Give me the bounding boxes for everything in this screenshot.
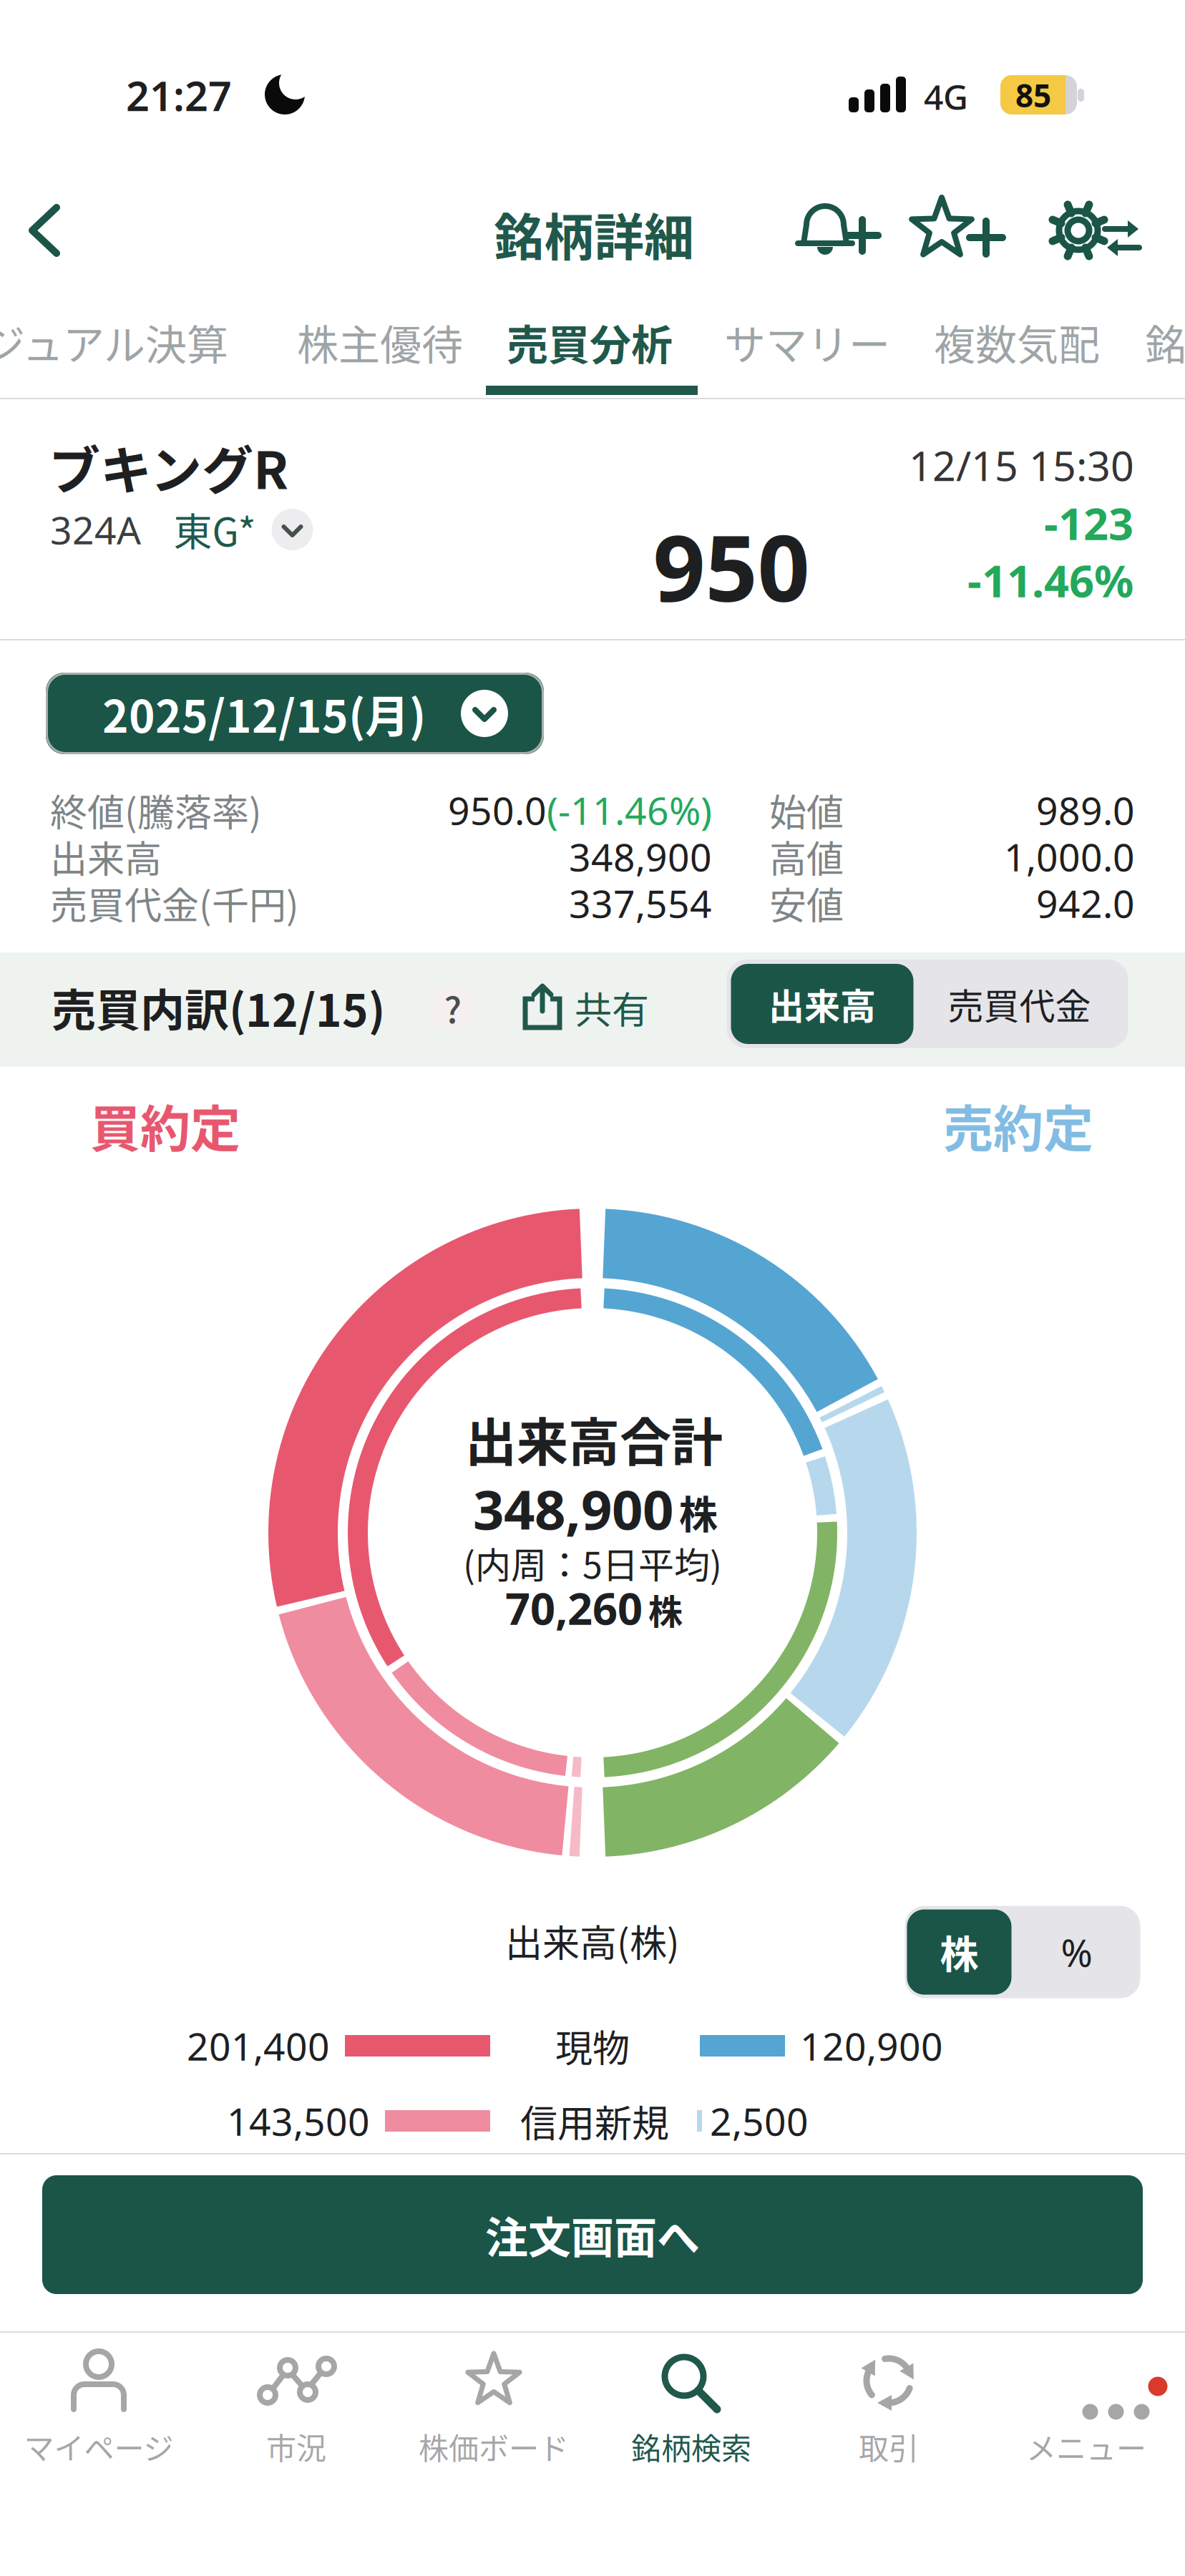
staticText: 銘柄詳細 bbox=[494, 198, 694, 270]
staticText: 注文画面へ bbox=[485, 2204, 700, 2266]
staticText: 143,500 bbox=[227, 2096, 370, 2146]
staticText: 現物 bbox=[555, 2019, 630, 2073]
staticText: 348,900 bbox=[569, 831, 712, 882]
staticText: 942.0 bbox=[1036, 878, 1135, 928]
staticText: 売買内訳(12/15) bbox=[52, 975, 385, 1040]
staticText: % bbox=[1061, 1927, 1092, 1977]
staticText: (-11.46%) bbox=[547, 785, 712, 835]
button[interactable]: マイページ bbox=[2, 2340, 195, 2476]
button[interactable]: 通知を追加 bbox=[789, 190, 882, 268]
button[interactable]: サマリー bbox=[724, 312, 890, 372]
staticText: 989.0 bbox=[1036, 785, 1135, 835]
staticText: 出来高合計 bbox=[465, 1401, 723, 1476]
staticText: 株 bbox=[648, 1584, 683, 1634]
staticText: 売買代金(千円) bbox=[50, 876, 299, 930]
button[interactable]: 出来高 bbox=[731, 964, 913, 1044]
staticText: 複数気配 bbox=[934, 312, 1100, 372]
staticText: 高値 bbox=[769, 830, 844, 883]
button[interactable]: 東G* bbox=[174, 502, 313, 557]
staticText: 12/15 15:30 bbox=[909, 438, 1134, 492]
staticText: 信用新規 bbox=[520, 2094, 669, 2148]
staticText: 出来高 bbox=[50, 830, 162, 883]
staticText: 売買分析 bbox=[507, 312, 673, 372]
staticText: 70,260 bbox=[505, 1579, 643, 1637]
staticText: 2025/12/15(月) bbox=[102, 681, 426, 746]
staticText: 株 bbox=[940, 1924, 979, 1980]
staticText: 1,000.0 bbox=[1004, 831, 1135, 882]
staticText: ジュアル決算 bbox=[0, 312, 228, 372]
button[interactable]: ヘルプ bbox=[431, 982, 475, 1033]
staticText: 銘柄 bbox=[1145, 312, 1185, 372]
staticText: メニュー bbox=[1026, 2425, 1146, 2468]
button[interactable]: % bbox=[1016, 1906, 1137, 1998]
staticText: 950 bbox=[653, 505, 810, 627]
button[interactable]: 売買代金 bbox=[914, 960, 1125, 1048]
staticText: 201,400 bbox=[187, 2020, 330, 2071]
staticText: 買約定 bbox=[90, 1089, 240, 1162]
button[interactable]: 銘柄 bbox=[1145, 312, 1185, 372]
staticText: マイページ bbox=[24, 2425, 174, 2468]
staticText: サマリー bbox=[724, 312, 890, 372]
staticText: (内周：5日平均) bbox=[463, 1537, 722, 1589]
button[interactable]: 市況 bbox=[200, 2340, 393, 2476]
staticText: 取引 bbox=[859, 2425, 919, 2468]
button[interactable]: 共有 bbox=[522, 981, 649, 1034]
staticText: 120,900 bbox=[800, 2020, 943, 2071]
staticText: 324A bbox=[50, 504, 141, 555]
staticText: 終値(騰落率) bbox=[50, 783, 262, 837]
staticText: 85 bbox=[1015, 74, 1051, 116]
staticText: 337,554 bbox=[569, 878, 712, 928]
staticText: 株主優待 bbox=[297, 312, 463, 372]
staticText: 共有 bbox=[575, 981, 649, 1034]
button[interactable]: 複数気配 bbox=[934, 312, 1100, 372]
staticText: 売約定 bbox=[943, 1089, 1093, 1162]
staticText: ? bbox=[444, 982, 462, 1033]
staticText: -11.46% bbox=[967, 551, 1133, 609]
staticText: 出来高(株) bbox=[505, 1914, 680, 1968]
staticText: 2,500 bbox=[710, 2096, 809, 2146]
staticText: ブキングR bbox=[49, 429, 288, 504]
button[interactable]: 売買分析 bbox=[507, 312, 673, 372]
staticText: 始値 bbox=[769, 783, 844, 837]
button[interactable]: 設定 bbox=[1030, 190, 1145, 268]
button[interactable]: 注文画面へ bbox=[42, 2175, 1143, 2294]
staticText: 安値 bbox=[769, 876, 844, 930]
staticText: 348,900 bbox=[473, 1472, 673, 1544]
staticText: 950.0 bbox=[448, 785, 547, 835]
button[interactable]: 株主優待 bbox=[297, 312, 463, 372]
button[interactable]: 株 bbox=[907, 1909, 1011, 1995]
button[interactable]: 銘柄検索 bbox=[595, 2340, 788, 2476]
staticText: 銘柄検索 bbox=[631, 2425, 751, 2468]
staticText: 出来高 bbox=[769, 978, 876, 1030]
button[interactable]: Back bbox=[12, 191, 77, 270]
button[interactable]: ジュアル決算 bbox=[0, 312, 228, 372]
button[interactable]: お気に入りに追加 bbox=[910, 190, 1003, 268]
staticText: 市況 bbox=[266, 2425, 326, 2468]
staticText: 株 bbox=[679, 1484, 718, 1540]
staticText: 21:27 bbox=[126, 68, 232, 122]
staticText: 東G* bbox=[174, 502, 256, 557]
button[interactable]: メニュー bbox=[990, 2340, 1183, 2476]
staticText: 株価ボード bbox=[419, 2425, 569, 2468]
staticText: 売買代金 bbox=[948, 978, 1091, 1030]
button[interactable]: 取引 bbox=[792, 2340, 985, 2476]
button[interactable]: 株価ボード bbox=[397, 2340, 590, 2476]
button[interactable]: 2025/12/15(月) bbox=[46, 673, 544, 754]
staticText: -123 bbox=[1044, 494, 1133, 552]
staticText: 4G bbox=[924, 74, 968, 119]
